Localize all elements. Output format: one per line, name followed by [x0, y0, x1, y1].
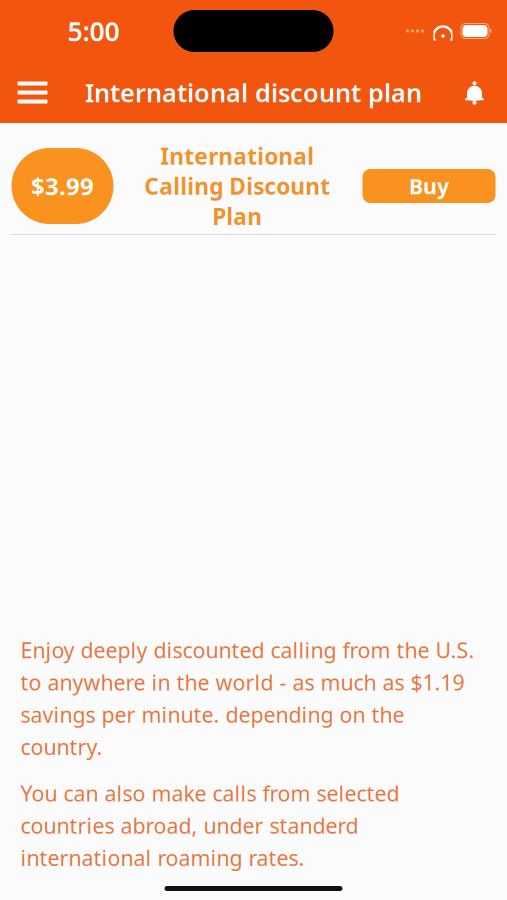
staticText: $3.99 — [31, 170, 94, 202]
staticText: Enjoy deeply discounted calling from the… — [20, 636, 474, 761]
staticText: International discount plan — [85, 76, 422, 109]
staticText: 5:00 — [67, 13, 119, 49]
staticText: You can also make calls from selected co… — [20, 779, 399, 872]
button[interactable]: Buy — [362, 169, 495, 203]
staticText: International Calling Discount Plan — [144, 141, 330, 231]
button[interactable]: Notifications — [447, 67, 501, 117]
staticText: Buy — [409, 172, 449, 200]
button[interactable]: Menu — [5, 67, 59, 117]
